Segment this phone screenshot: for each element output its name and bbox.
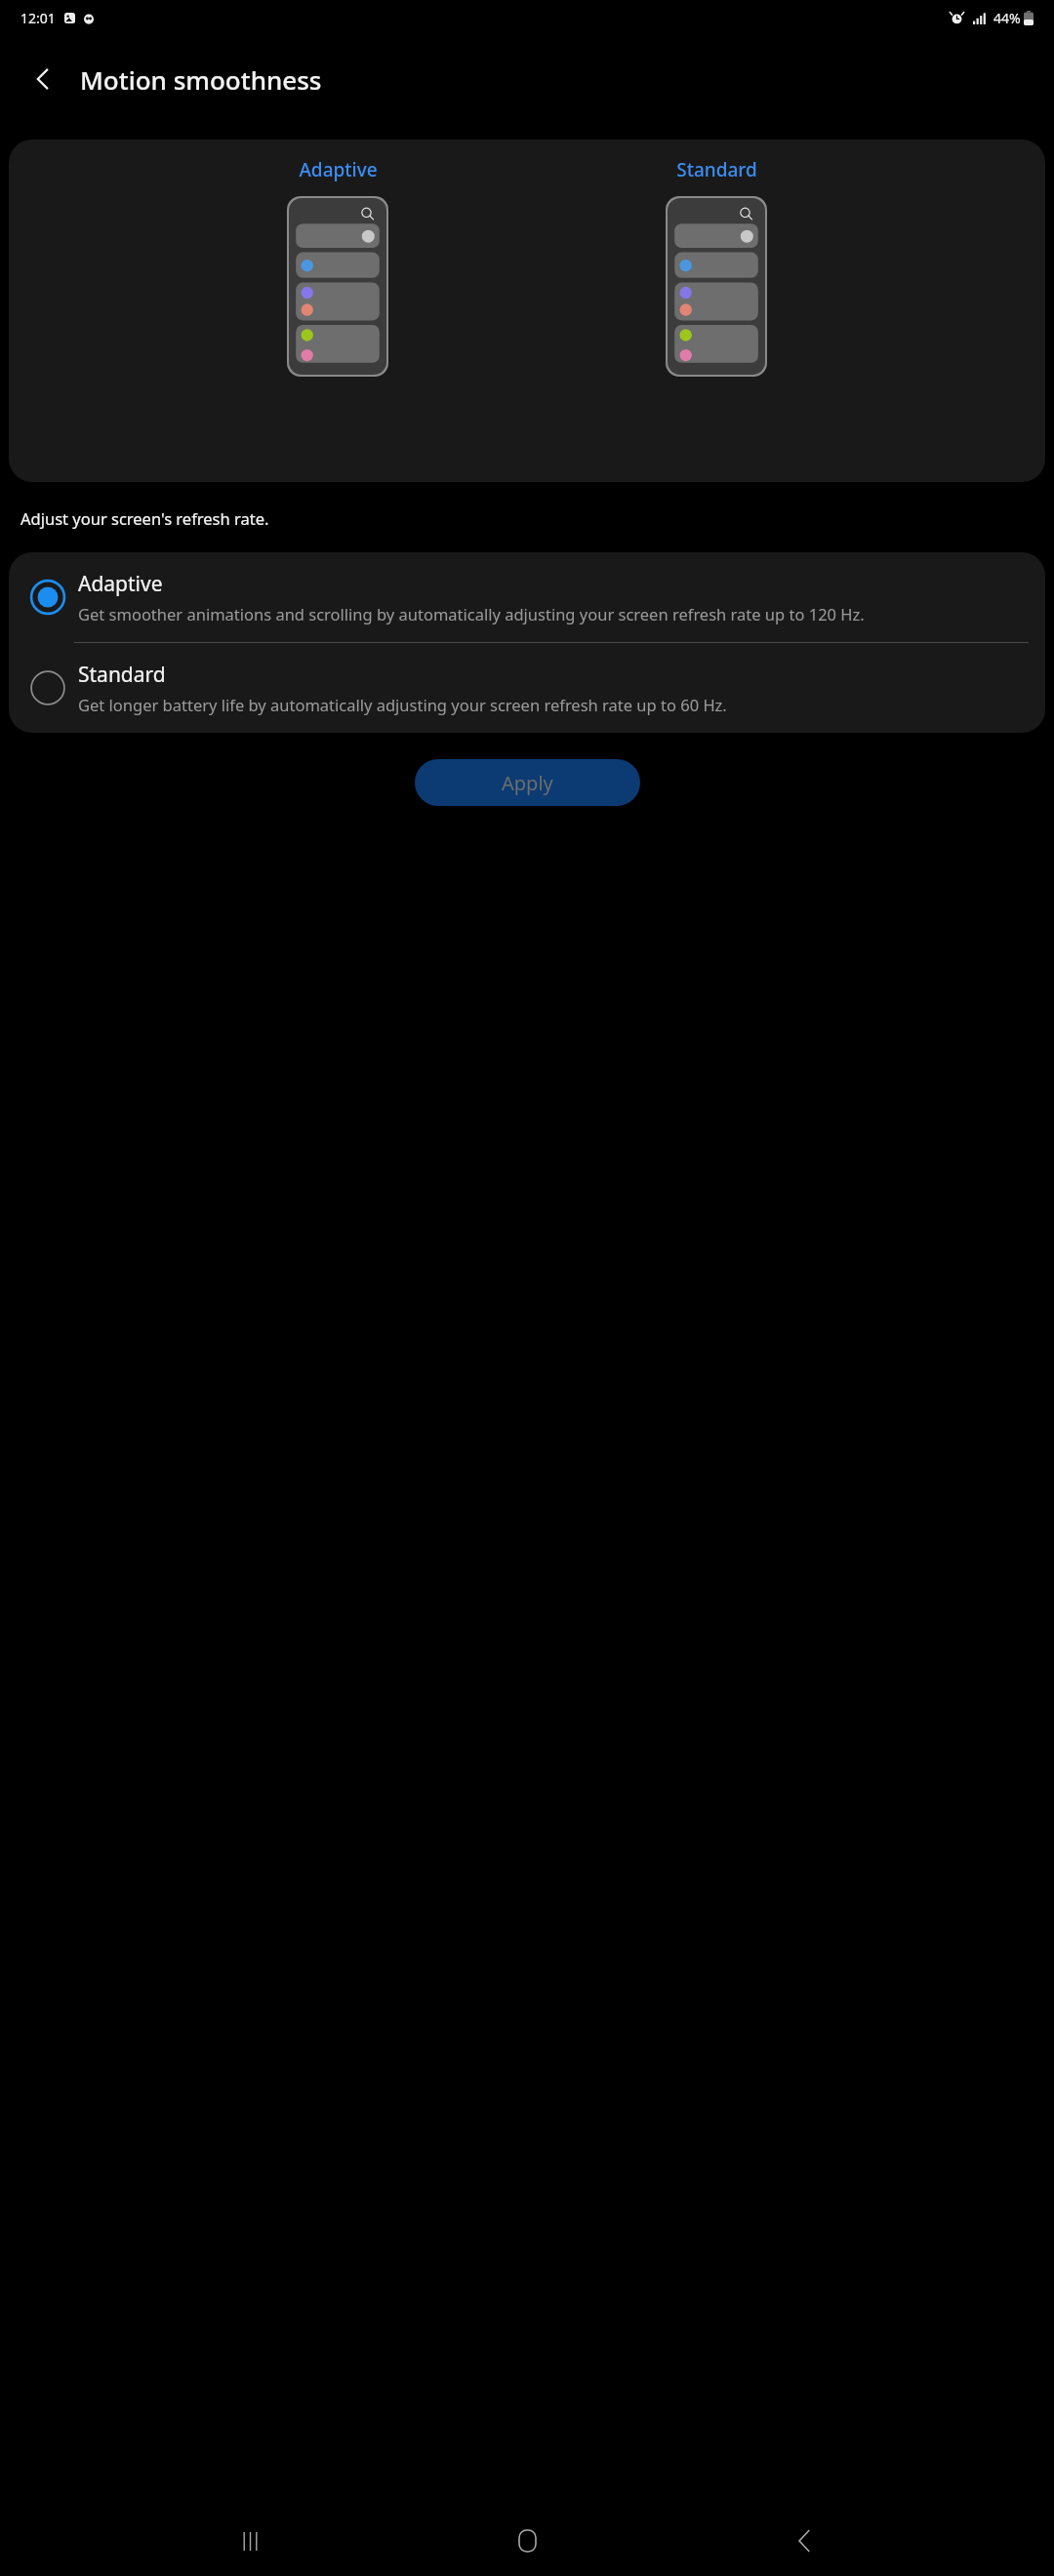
button[interactable]: Adaptive [9,552,1045,642]
staticText: Adaptive [299,157,378,182]
staticText: Adjust your screen's refresh rate. [20,507,269,529]
staticText: Get longer battery life by automatically… [78,694,727,715]
button[interactable]: Back [777,2514,831,2568]
button[interactable]: Apply [415,759,640,806]
staticText: Apply [502,770,553,796]
button[interactable]: Home [500,2514,554,2568]
button[interactable]: Standard [9,643,1045,733]
staticText: Standard [78,661,166,689]
staticText: Adaptive [78,570,163,598]
button[interactable]: Recents [223,2514,277,2568]
button[interactable]: Back [18,54,68,104]
staticText: Get smoother animations and scrolling by… [78,603,865,624]
staticText: Standard [676,157,757,182]
staticText: Motion smoothness [80,62,322,97]
staticText: 44% [993,9,1021,27]
staticText: 12:01 [20,9,56,27]
